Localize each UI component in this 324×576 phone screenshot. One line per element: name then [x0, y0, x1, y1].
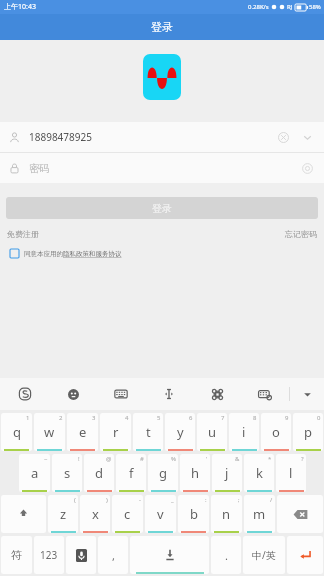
button[interactable]: 同意本应用的	[10, 249, 324, 258]
button[interactable]: Space	[130, 536, 209, 574]
staticText: 1	[26, 414, 30, 422]
button[interactable]: x	[80, 495, 110, 533]
staticText: 2	[59, 414, 63, 422]
button[interactable]: s	[52, 454, 82, 492]
staticText: ?	[301, 455, 304, 463]
staticText: RJ	[287, 3, 293, 11]
staticText: -	[139, 496, 141, 504]
staticText: _	[171, 496, 174, 504]
staticText: f	[129, 464, 134, 482]
button[interactable]: Toggle password	[299, 160, 315, 176]
staticText: 同意本应用的	[24, 250, 63, 258]
staticText: 登录	[152, 202, 172, 215]
button[interactable]: Cursor move	[145, 378, 193, 410]
staticText: h	[191, 464, 200, 482]
staticText: 6	[189, 414, 193, 422]
staticText: a	[31, 464, 39, 482]
staticText: 9	[285, 414, 289, 422]
button[interactable]: n	[211, 495, 242, 533]
button[interactable]: Shift	[1, 495, 46, 533]
button[interactable]: o	[261, 413, 291, 451]
staticText: '	[206, 455, 208, 463]
staticText: l	[289, 464, 293, 482]
staticText: 隐私政策和服务协议	[63, 250, 122, 258]
button[interactable]: More	[290, 378, 324, 410]
staticText: r	[113, 423, 119, 441]
staticText: p	[304, 423, 312, 441]
button[interactable]: 中/英	[243, 536, 285, 574]
button[interactable]: u	[197, 413, 227, 451]
button[interactable]: z	[48, 495, 78, 533]
button[interactable]: i	[229, 413, 259, 451]
button[interactable]: g	[148, 454, 178, 492]
staticText: 4	[125, 414, 129, 422]
button[interactable]: w	[34, 413, 65, 451]
staticText: )	[106, 496, 108, 504]
staticText: &	[235, 455, 240, 463]
button[interactable]: t	[133, 413, 163, 451]
staticText: /	[270, 496, 273, 504]
button[interactable]: c	[112, 495, 143, 533]
staticText: 免费注册	[7, 229, 39, 239]
button[interactable]: k	[244, 454, 274, 492]
staticText: 5	[157, 414, 161, 422]
button[interactable]: h	[180, 454, 210, 492]
staticText: 中/英	[252, 548, 276, 562]
button[interactable]: 忘记密码	[285, 229, 317, 239]
button[interactable]: .	[211, 536, 241, 574]
staticText: #	[140, 455, 144, 463]
staticText: k	[256, 464, 263, 482]
staticText: 登录	[151, 20, 173, 34]
button[interactable]: l	[276, 454, 306, 492]
staticText: .	[225, 548, 228, 563]
button[interactable]: Enter	[287, 536, 323, 574]
button[interactable]: Emoji	[49, 378, 97, 410]
button[interactable]: e	[67, 413, 98, 451]
button[interactable]: ,	[98, 536, 128, 574]
staticText: %	[171, 455, 176, 463]
staticText: n	[222, 505, 231, 523]
staticText: ~	[44, 455, 48, 463]
staticText: !	[78, 455, 80, 463]
staticText: 忘记密码	[285, 229, 317, 239]
button[interactable]: Settings	[241, 378, 289, 410]
button[interactable]: b	[178, 495, 209, 533]
staticText: ,	[112, 548, 115, 563]
button[interactable]: Voice input	[66, 536, 96, 574]
staticText: x	[92, 505, 99, 523]
button[interactable]: Backspace	[277, 495, 323, 533]
button[interactable]: r	[100, 413, 131, 451]
staticText: v	[157, 505, 164, 523]
staticText: :	[205, 496, 207, 504]
staticText: (	[74, 496, 76, 504]
button[interactable]: 123	[34, 536, 64, 574]
staticText: 密码	[29, 162, 49, 175]
button[interactable]: d	[84, 454, 114, 492]
button[interactable]: q	[1, 413, 32, 451]
button[interactable]: 符	[1, 536, 32, 574]
staticText: 123	[40, 548, 58, 562]
staticText: u	[208, 423, 217, 441]
staticText: g	[159, 464, 167, 482]
staticText: i	[242, 423, 246, 441]
staticText: j	[225, 464, 229, 482]
button[interactable]: Shortcut	[193, 378, 241, 410]
button[interactable]: Keyboard layout	[97, 378, 145, 410]
button[interactable]: Clear	[275, 129, 291, 145]
button[interactable]: p	[293, 413, 323, 451]
staticText: w	[44, 423, 55, 441]
button[interactable]: y	[165, 413, 195, 451]
button[interactable]: f	[116, 454, 146, 492]
button[interactable]: m	[244, 495, 275, 533]
button[interactable]: a	[19, 454, 50, 492]
button[interactable]: Show history	[299, 129, 315, 145]
button[interactable]: Input method	[0, 378, 49, 410]
staticText: 0	[317, 414, 321, 422]
staticText: *	[268, 455, 272, 463]
button[interactable]: v	[145, 495, 176, 533]
staticText: e	[79, 423, 87, 441]
button[interactable]: 免费注册	[7, 229, 39, 239]
staticText: q	[13, 423, 21, 441]
button[interactable]: j	[212, 454, 242, 492]
